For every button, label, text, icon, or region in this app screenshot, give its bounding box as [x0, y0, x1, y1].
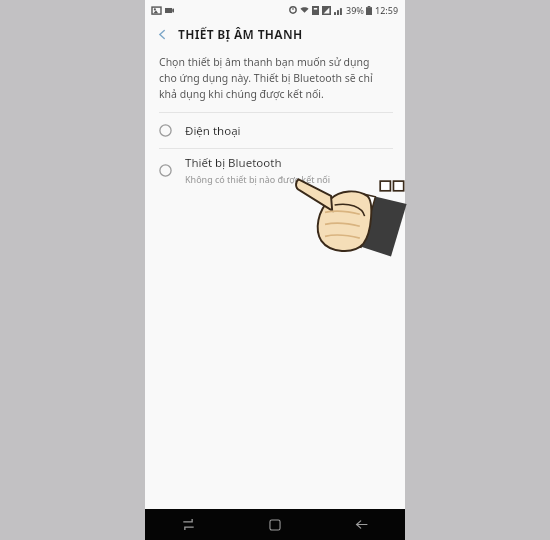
staticText: 12:59	[375, 4, 399, 16]
button[interactable]: Điện thoại	[145, 113, 405, 148]
button[interactable]: Thiết bị Bluetooth	[145, 149, 405, 191]
button[interactable]: Back	[151, 23, 173, 45]
staticText: Thiết bị Bluetooth	[185, 155, 282, 171]
staticText: Chọn thiết bị âm thanh bạn muốn sử dụng …	[159, 55, 388, 101]
staticText: Điện thoại	[185, 123, 241, 139]
staticText: Không có thiết bị nào được kết nối	[185, 173, 331, 185]
staticText: 39%	[346, 4, 364, 16]
staticText: THIẾT BỊ ÂM THANH	[178, 26, 303, 42]
button[interactable]: Back	[318, 509, 405, 540]
button[interactable]: Recents	[145, 509, 231, 540]
button[interactable]: Home	[231, 509, 318, 540]
